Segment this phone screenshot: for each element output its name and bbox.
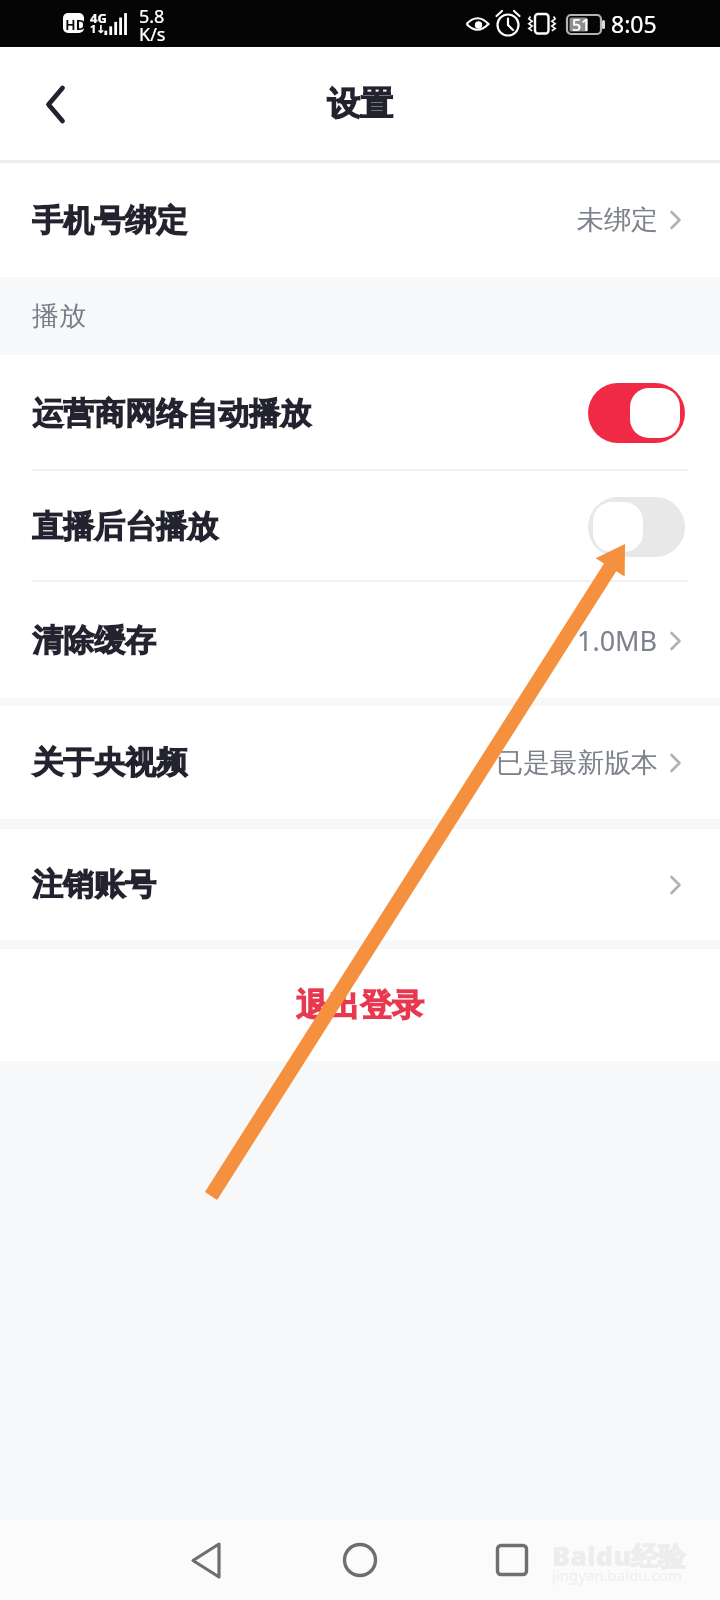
staticText: 清除缓存	[32, 621, 156, 660]
staticText: 退出登录	[296, 985, 424, 1025]
button[interactable]: 手机号绑定	[0, 163, 720, 277]
staticText: 8:05	[611, 8, 657, 39]
staticText: 手机号绑定	[32, 201, 187, 240]
staticText: 已是最新版本	[496, 746, 658, 780]
button[interactable]: 直播后台播放	[0, 471, 720, 582]
button[interactable]: 清除缓存	[0, 582, 720, 698]
button[interactable]: 运营商网络自动播放	[0, 355, 720, 471]
button[interactable]: Home	[320, 1520, 400, 1600]
staticText: 运营商网络自动播放	[32, 394, 311, 433]
button[interactable]: Back	[0, 47, 96, 160]
button[interactable]: Recent apps	[472, 1520, 552, 1600]
staticText: 未绑定	[577, 203, 658, 237]
staticText: 1↓	[90, 21, 106, 36]
button[interactable]: 关于央视频	[0, 706, 720, 819]
staticText: Baidu经验	[552, 1537, 686, 1574]
staticText: 51	[572, 14, 591, 36]
staticText: K/s	[139, 22, 166, 47]
button[interactable]: 直播后台播放	[588, 497, 685, 557]
staticText: 注销账号	[32, 865, 156, 904]
staticText: 关于央视频	[32, 743, 187, 782]
staticText: 设置	[327, 83, 393, 125]
button[interactable]: 运营商网络自动播放	[588, 383, 685, 443]
staticText: 1.0MB	[577, 622, 658, 659]
staticText: 4G	[90, 9, 107, 27]
staticText: 直播后台播放	[32, 507, 218, 546]
button[interactable]: 注销账号	[0, 829, 720, 940]
button[interactable]: 退出登录	[0, 949, 720, 1061]
staticText: HD	[65, 15, 86, 34]
staticText: 5.8	[139, 4, 165, 29]
button[interactable]: Back	[165, 1520, 245, 1600]
staticText: 播放	[32, 299, 86, 333]
staticText: jingyan.baidu.com	[552, 1565, 682, 1585]
